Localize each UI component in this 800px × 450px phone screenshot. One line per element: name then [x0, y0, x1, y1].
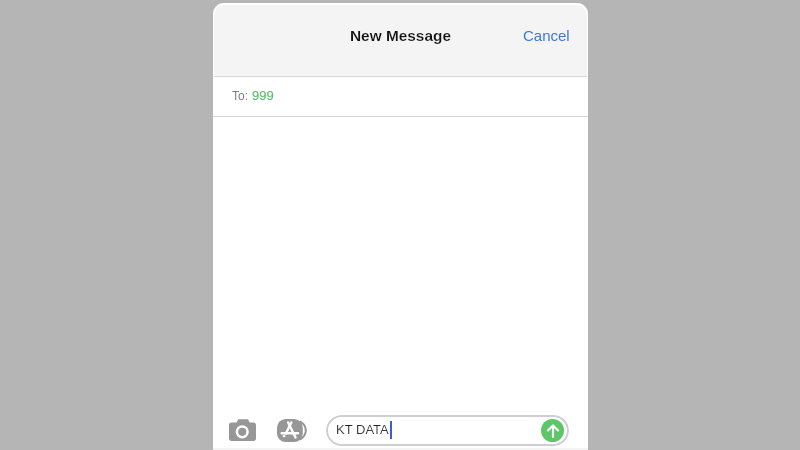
button[interactable]: App Store — [277, 415, 307, 445]
staticText: New Message — [350, 27, 451, 44]
button[interactable]: KT DATA — [326, 415, 569, 446]
staticText: 999 — [252, 88, 274, 103]
staticText: To: — [232, 89, 252, 102]
button[interactable]: Take photo — [227, 415, 257, 445]
button[interactable]: Cancel — [517, 21, 576, 50]
staticText: KT DATA — [336, 422, 389, 437]
staticText: Cancel — [523, 27, 570, 44]
button[interactable]: Send — [541, 419, 564, 442]
